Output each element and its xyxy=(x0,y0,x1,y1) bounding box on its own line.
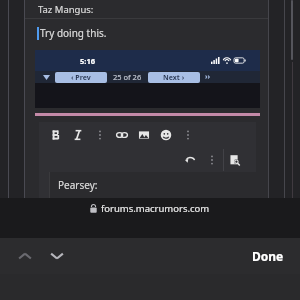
staticText: Try doing this. xyxy=(40,26,107,40)
button[interactable]: ‹ Prev xyxy=(55,72,107,83)
button[interactable]: Preview xyxy=(224,149,246,171)
button[interactable]: Previous field xyxy=(12,243,38,269)
button[interactable]: Italic xyxy=(67,124,89,146)
button[interactable]: Done xyxy=(252,248,284,264)
staticText: 5:16 xyxy=(80,56,95,66)
button[interactable]: More options xyxy=(177,124,199,146)
staticText: Done xyxy=(252,248,284,264)
button[interactable]: Insert link xyxy=(111,124,133,146)
button[interactable]: Bold xyxy=(45,124,67,146)
staticText: 25 of 26 xyxy=(113,72,142,82)
staticText: Pearsey: xyxy=(58,178,98,192)
staticText: forums.macrumors.com xyxy=(101,202,210,215)
staticText: ‹ Prev xyxy=(71,73,91,83)
button[interactable]: Undo xyxy=(179,149,201,171)
staticText: ›› xyxy=(205,72,211,82)
button[interactable]: Insert emoji xyxy=(155,124,177,146)
staticText: Taz Mangus: xyxy=(38,3,94,16)
button[interactable]: More xyxy=(201,149,223,171)
button[interactable]: Next field xyxy=(44,243,70,269)
button[interactable]: Next › xyxy=(148,72,200,83)
staticText: Next › xyxy=(163,73,185,83)
button[interactable]: More text options xyxy=(89,124,111,146)
button[interactable]: Insert image xyxy=(133,124,155,146)
